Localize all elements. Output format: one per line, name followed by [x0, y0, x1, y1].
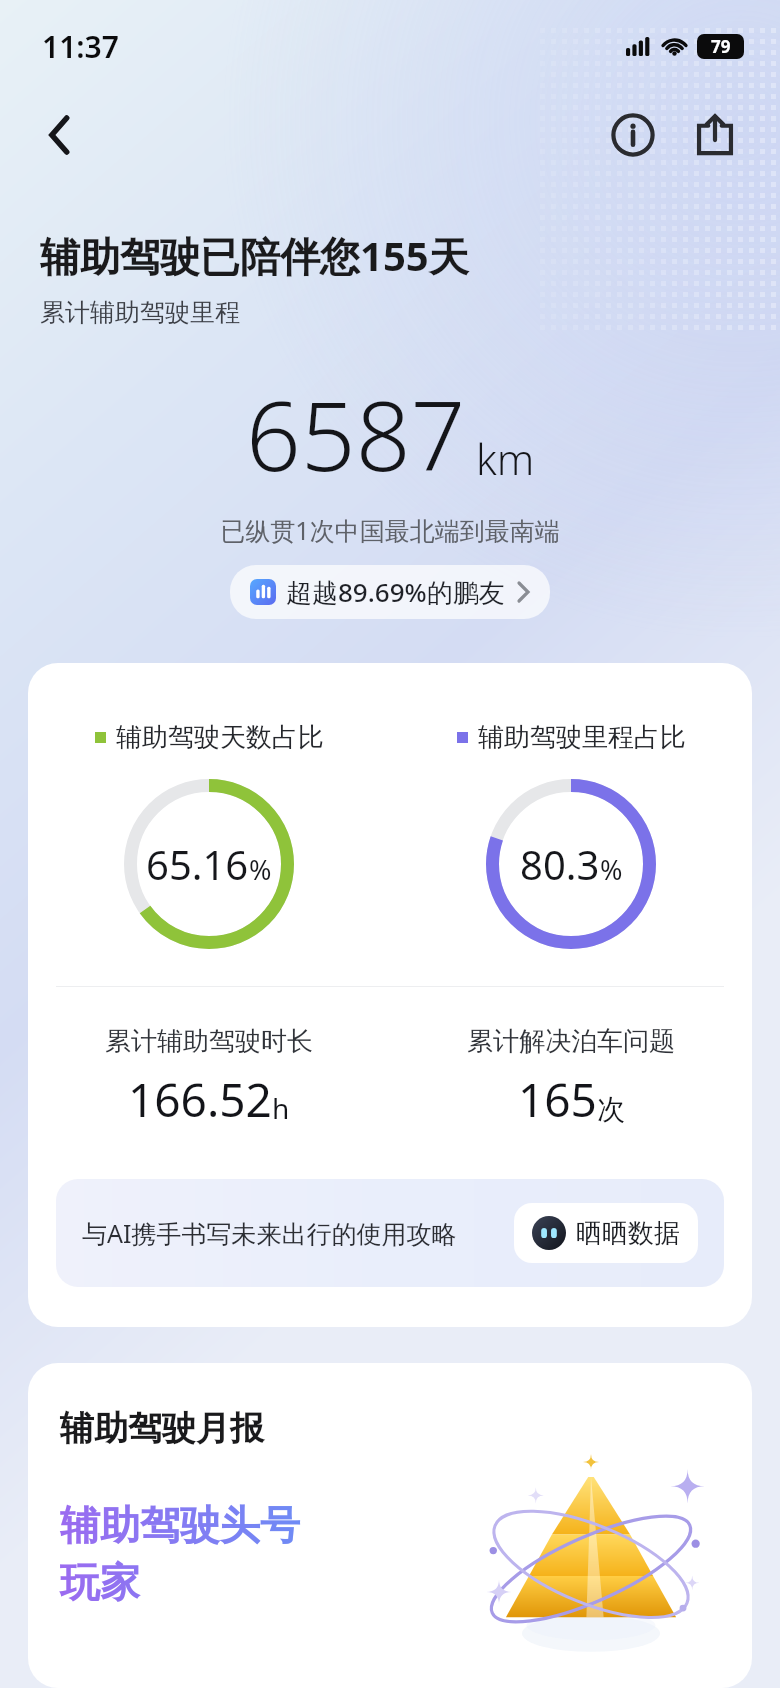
- staticText: 11:37: [42, 26, 119, 67]
- staticText: 与AI携手书写未来出行的使用攻略: [82, 1216, 494, 1250]
- staticText: 辅助驾驶天数占比: [116, 721, 324, 754]
- staticText: 次: [597, 1092, 625, 1127]
- staticText: 已纵贯1次中国最北端到最南端: [0, 513, 780, 547]
- staticText: 65.16: [146, 837, 249, 891]
- staticText: 累计辅助驾驶里程: [40, 297, 240, 328]
- staticText: 80.3: [520, 837, 600, 891]
- button[interactable]: Info: [602, 104, 664, 166]
- staticText: 超越89.69%的鹏友: [286, 574, 505, 610]
- staticText: 累计解决泊车问题: [467, 1025, 675, 1058]
- staticText: 累计辅助驾驶时长: [105, 1025, 313, 1058]
- staticText: 辅助驾驶月报: [60, 1407, 264, 1450]
- staticText: km: [476, 430, 535, 487]
- staticText: 晒晒数据: [576, 1217, 680, 1250]
- button[interactable]: Share: [684, 104, 746, 166]
- staticText: 6587: [246, 368, 466, 499]
- staticText: 辅助驾驶里程占比: [478, 721, 686, 754]
- staticText: %: [600, 851, 623, 888]
- staticText: 辅助驾驶已陪伴您155天: [40, 228, 469, 283]
- staticText: 166.52: [128, 1068, 272, 1131]
- staticText: %: [249, 851, 272, 888]
- button[interactable]: Back: [30, 105, 90, 165]
- staticText: h: [272, 1089, 290, 1127]
- staticText: 79: [711, 35, 731, 58]
- button[interactable]: 辅助驾驶月报: [28, 1363, 752, 1688]
- staticText: 165: [518, 1068, 597, 1131]
- staticText: 辅助驾驶头号 玩家: [60, 1500, 301, 1608]
- button[interactable]: 与AI携手书写未来出行的使用攻略: [56, 1179, 724, 1287]
- button[interactable]: 超越89.69%的鹏友: [230, 565, 550, 619]
- button[interactable]: 晒晒数据: [514, 1203, 698, 1263]
